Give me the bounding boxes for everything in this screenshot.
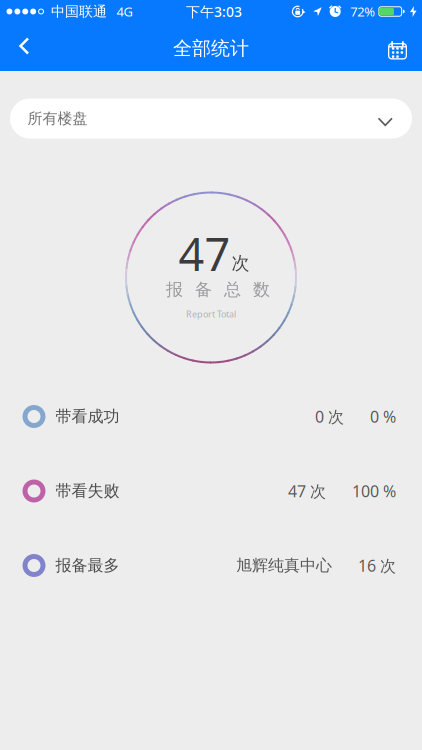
staticText: 中国联通 (51, 3, 107, 20)
staticText: 所有楼盘 (27, 109, 87, 128)
staticText: 数 (253, 279, 270, 300)
staticText: 100 % (352, 480, 396, 502)
staticText: 备 (195, 279, 212, 300)
staticText: 47 次 (288, 480, 326, 502)
staticText: 0 次 (315, 406, 344, 427)
button[interactable]: Back (0, 23, 43, 71)
button[interactable]: 所有楼盘 (10, 98, 412, 138)
staticText: 4G (116, 3, 132, 20)
staticText: 总 (224, 279, 241, 300)
staticText: 全部统计 (173, 37, 249, 60)
staticText: 下午3:03 (186, 2, 242, 21)
staticText: 47 (178, 224, 230, 283)
staticText: 16 次 (358, 555, 396, 576)
staticText: 0 % (370, 406, 396, 427)
staticText: 旭辉纯真中心 (236, 556, 332, 575)
button[interactable]: Calendar (376, 23, 422, 71)
staticText: 带看成功 (55, 407, 119, 426)
staticText: 带看失败 (55, 481, 119, 501)
staticText: 报 (166, 279, 183, 300)
staticText: 次 (231, 252, 249, 274)
staticText: 72% (350, 3, 375, 20)
staticText: Report Total (186, 308, 236, 320)
staticText: 报备最多 (55, 556, 119, 575)
